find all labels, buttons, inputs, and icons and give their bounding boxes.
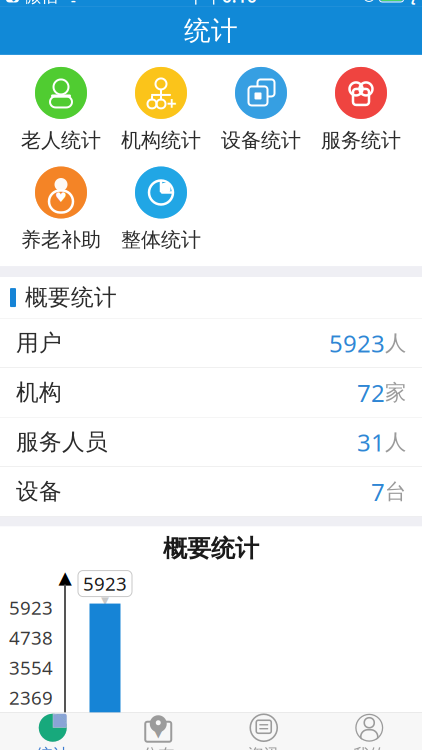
staticText: ♥ xyxy=(55,190,67,205)
button[interactable]: 整体统计 xyxy=(111,166,211,252)
button[interactable]: 统计 xyxy=(0,713,105,750)
staticText: + xyxy=(167,91,177,114)
staticText: ▲ xyxy=(58,568,71,587)
staticText: 微信 xyxy=(19,0,58,7)
staticText: 7 xyxy=(371,476,385,507)
staticText: 资讯 xyxy=(248,745,280,750)
staticText: 31 xyxy=(357,426,385,458)
staticText: 统计 xyxy=(37,745,69,750)
staticText: 人 xyxy=(385,429,406,455)
staticText: 72 xyxy=(357,377,385,408)
staticText: 用户 xyxy=(16,329,62,357)
staticText: 设备统计 xyxy=(221,128,301,152)
button[interactable]: 服务统计 xyxy=(311,67,411,152)
button[interactable]: 设备 xyxy=(0,467,422,517)
staticText: 服务人员 xyxy=(16,428,108,456)
staticText: 分布 xyxy=(142,745,174,750)
staticText: 台 xyxy=(385,478,406,505)
staticText: 概要统计 xyxy=(25,284,117,311)
button[interactable]: + xyxy=(111,67,211,152)
staticText: 2369 xyxy=(9,685,53,710)
button[interactable]: ♥ xyxy=(11,166,111,252)
button[interactable]: 用户 xyxy=(0,319,422,368)
staticText: 机构统计 xyxy=(121,128,201,152)
staticText: 设备 xyxy=(16,478,62,505)
staticText: ▾ xyxy=(153,720,163,743)
staticText: 5923 xyxy=(83,571,127,596)
staticText: 整体统计 xyxy=(121,227,201,252)
staticText: 我的 xyxy=(353,745,385,750)
staticText: 老人统计 xyxy=(21,128,101,152)
staticText: 服务统计 xyxy=(321,128,401,152)
staticText: ‹ xyxy=(9,0,15,6)
button[interactable]: ▾ xyxy=(105,713,211,750)
staticText: 统计 xyxy=(184,15,238,47)
button[interactable]: 服务人员 xyxy=(0,418,422,467)
staticText: 5923 xyxy=(9,595,53,620)
staticText: ᯤ xyxy=(58,0,81,6)
staticText: 人 xyxy=(385,330,406,356)
staticText: 4738 xyxy=(9,625,53,650)
button[interactable]: 机构 xyxy=(0,368,422,418)
button[interactable]: 资讯 xyxy=(211,713,316,750)
staticText: 机构 xyxy=(16,379,62,406)
staticText: 家 xyxy=(385,379,406,406)
button[interactable]: 老人统计 xyxy=(11,67,111,152)
button[interactable]: 我的 xyxy=(316,713,422,750)
staticText: 下午6:16 xyxy=(188,0,257,7)
staticText: 概要统计 xyxy=(163,534,259,563)
staticText: 养老补助 xyxy=(21,227,101,252)
staticText: ▾ xyxy=(101,591,109,609)
staticText: 3554 xyxy=(9,655,53,680)
staticText: 5923 xyxy=(329,327,385,359)
button[interactable]: 设备统计 xyxy=(211,67,311,152)
staticText: ϟ xyxy=(408,0,416,6)
